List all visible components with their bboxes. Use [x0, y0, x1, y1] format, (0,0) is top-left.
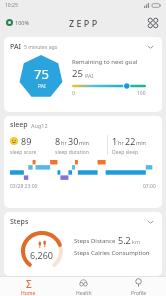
staticText: Profile: [131, 290, 147, 296]
staticText: 8: [55, 135, 61, 147]
staticText: 89: [21, 135, 32, 147]
staticText: Remaining to next goal: [72, 58, 138, 66]
button[interactable]: Apps: [146, 16, 160, 30]
staticText: Deep sleep: [112, 149, 139, 156]
staticText: 07:00: [143, 183, 156, 190]
staticText: 30: [68, 135, 79, 147]
staticText: Steps Distance: [74, 237, 116, 245]
staticText: Steps: [10, 217, 29, 227]
staticText: 100%: [15, 19, 30, 26]
button[interactable]: Profile: [111, 277, 166, 296]
staticText: 100: [137, 90, 146, 97]
staticText: km: [132, 238, 141, 245]
staticText: Aug12: [31, 122, 48, 129]
button[interactable]: Watch battery: [6, 19, 30, 26]
staticText: Z E P P: [69, 17, 98, 29]
staticText: 1: [112, 135, 118, 147]
staticText: sleep: [10, 120, 28, 130]
staticText: min: [136, 139, 146, 146]
button[interactable]: sleep: [4, 116, 162, 208]
button[interactable]: Health: [56, 277, 111, 296]
button[interactable]: Collapse PAI: [144, 41, 156, 53]
staticText: sleep duration: [55, 149, 89, 156]
staticText: 22: [125, 135, 136, 147]
staticText: hr: [118, 139, 124, 146]
staticText: min: [79, 139, 89, 146]
staticText: 0: [72, 90, 75, 97]
staticText: 10:25: [5, 2, 18, 9]
staticText: Health: [76, 290, 92, 296]
button[interactable]: Steps: [4, 212, 162, 276]
staticText: Home: [21, 290, 36, 296]
button[interactable]: Σ: [0, 277, 56, 296]
staticText: 6,260: [30, 249, 54, 261]
staticText: hr: [61, 139, 67, 146]
staticText: 5 minutes ago: [24, 44, 58, 51]
staticText: PAI: [38, 83, 46, 90]
staticText: PAI: [85, 72, 94, 79]
staticText: Steps Calries Consumption: [74, 249, 150, 257]
staticText: 75: [34, 65, 49, 83]
button[interactable]: PAI: [4, 37, 162, 112]
button[interactable]: Collapse Steps: [144, 216, 156, 228]
staticText: 25: [72, 67, 83, 80]
staticText: Σ: [26, 277, 32, 288]
staticText: PAI: [10, 42, 21, 52]
staticText: 03/28 23:00: [10, 183, 38, 190]
staticText: 5.2: [118, 234, 131, 246]
staticText: sleep score: [10, 149, 37, 156]
